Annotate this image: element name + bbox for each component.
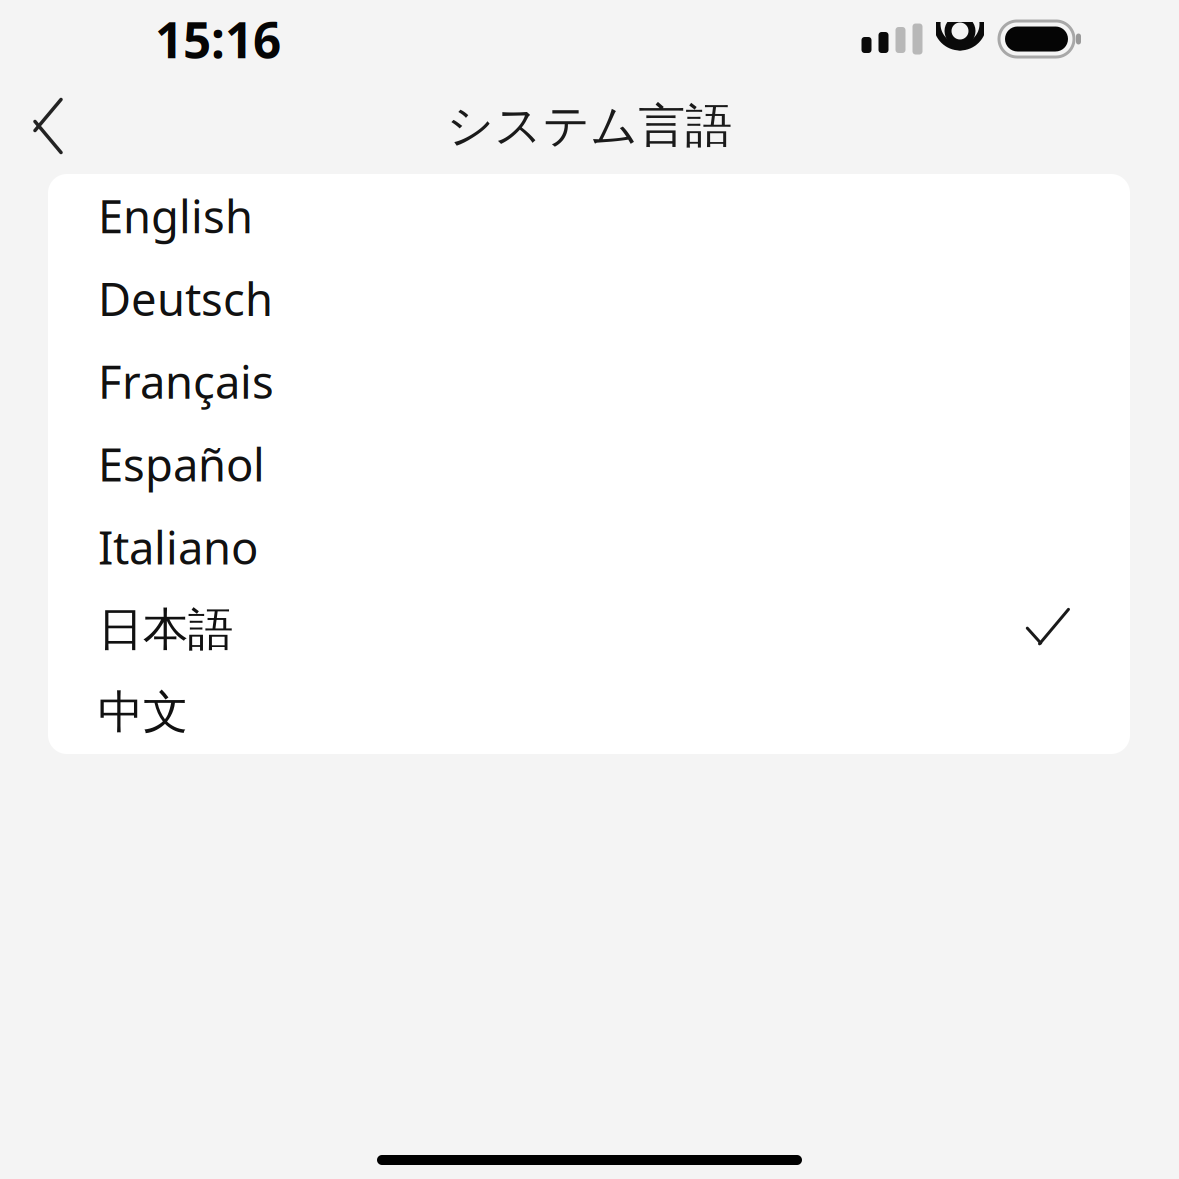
- staticText: Italiano: [98, 517, 258, 577]
- button[interactable]: Back: [0, 78, 96, 174]
- staticText: 中文: [98, 685, 188, 740]
- button[interactable]: Italiano: [48, 505, 1130, 588]
- staticText: English: [98, 185, 253, 246]
- staticText: Français: [98, 351, 274, 411]
- button[interactable]: Deutsch: [48, 257, 1130, 340]
- staticText: 日本語: [98, 602, 233, 657]
- button[interactable]: Español: [48, 423, 1130, 505]
- staticText: Español: [98, 434, 265, 494]
- staticText: Deutsch: [98, 268, 273, 328]
- button[interactable]: Français: [48, 340, 1130, 423]
- button[interactable]: 中文: [48, 671, 1130, 754]
- staticText: 15:16: [155, 6, 281, 72]
- button[interactable]: 日本語: [48, 588, 1130, 671]
- button[interactable]: English: [48, 174, 1130, 257]
- staticText: システム言語: [446, 97, 732, 155]
